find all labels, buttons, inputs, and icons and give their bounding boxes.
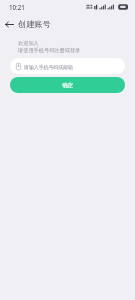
staticText: 创建账号 (18, 19, 51, 29)
staticText: 确定 (62, 82, 74, 89)
staticText: 请使用手机号码注册或登录 (18, 47, 81, 54)
staticText: 欢迎加入 (18, 40, 39, 47)
button[interactable]: 请输入手机号码或邮箱 (10, 58, 125, 74)
button[interactable]: Back (0, 16, 18, 32)
staticText: 请输入手机号码或邮箱 (24, 64, 73, 70)
button[interactable]: 确定 (10, 77, 125, 93)
staticText: 10:21 (9, 3, 25, 11)
